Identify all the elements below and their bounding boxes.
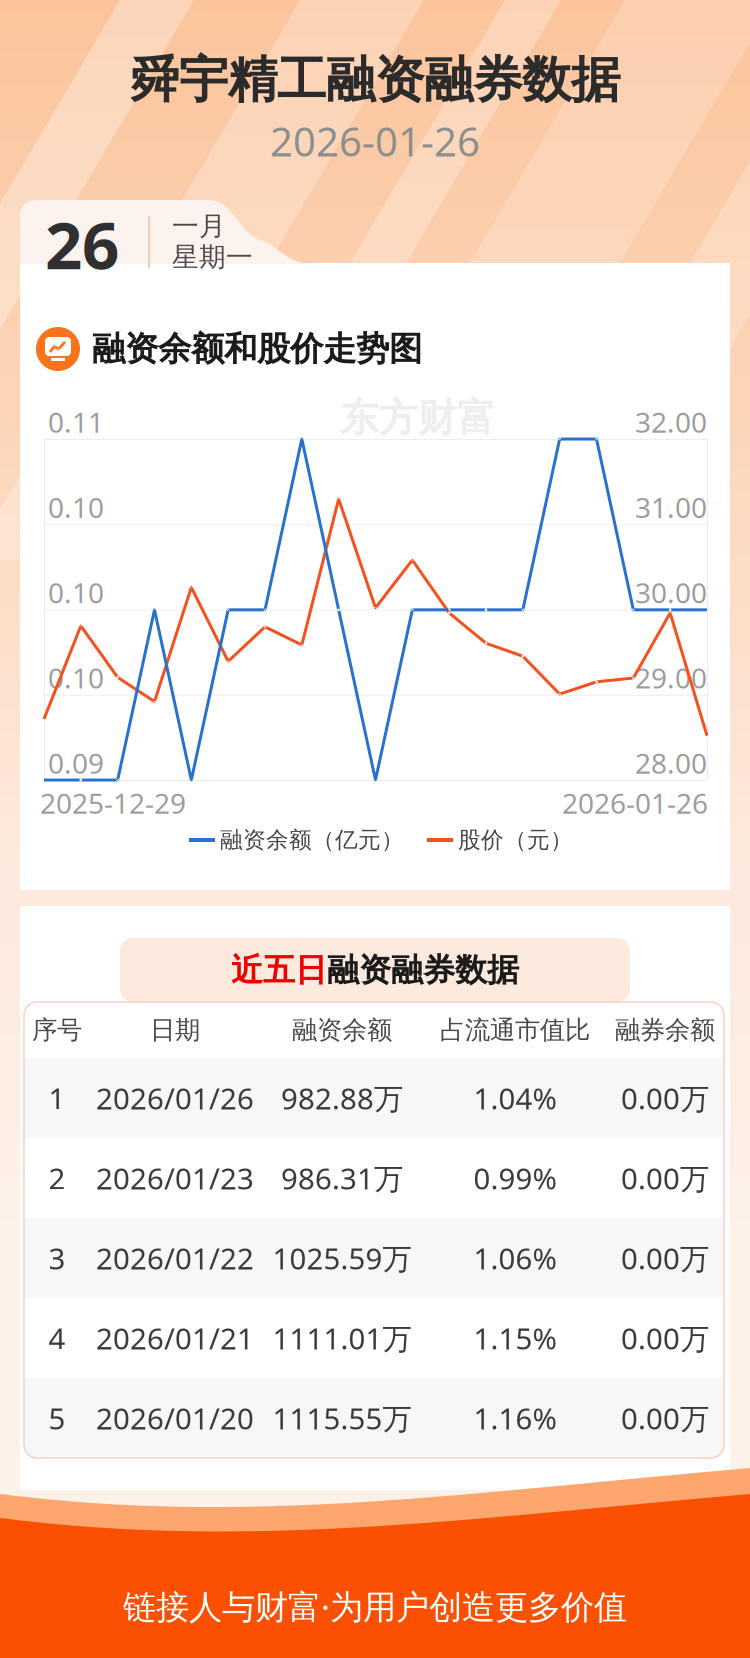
staticText: 5 [48,1398,65,1437]
staticText: 2026/01/23 [96,1158,254,1197]
staticText: 日期 [150,1014,200,1045]
staticText: 1.15% [473,1318,556,1357]
staticText: 986.31万 [281,1158,403,1197]
staticText: 32.00 [635,403,707,441]
staticText: 1.16% [473,1398,556,1437]
staticText: 29.00 [635,659,707,696]
staticText: 0.10 [48,489,104,526]
staticText: 0.99% [473,1158,556,1197]
staticText: 2026/01/21 [96,1318,254,1357]
staticText: 融资余额和股价走势图 [92,328,422,369]
staticText: 2 [48,1158,65,1197]
staticText: 近五日 [231,950,327,990]
staticText: 占流通市值比 [440,1014,590,1045]
staticText: 0.00万 [621,1158,709,1197]
staticText: 序号 [32,1014,82,1045]
staticText: 26 [45,201,119,287]
staticText: 0.09 [48,744,104,782]
staticText: 融资余额（亿元） [220,826,404,854]
staticText: 2026/01/26 [96,1078,254,1117]
staticText: 0.10 [48,659,104,696]
staticText: 4 [48,1318,65,1357]
staticText: 0.00万 [621,1078,709,1117]
staticText: 0.10 [48,574,104,611]
staticText: 31.00 [635,489,707,526]
staticText: 1115.55万 [272,1398,411,1437]
staticText: 融资融券数据 [327,950,519,990]
staticText: 2025-12-29 [40,784,186,822]
staticText: 982.88万 [281,1078,403,1117]
staticText: 28.00 [635,744,707,782]
staticText: 0.00万 [621,1238,709,1277]
staticText: 0.11 [48,403,104,441]
staticText: 股价（元） [458,826,573,854]
staticText: 30.00 [635,574,707,611]
staticText: 1 [48,1078,65,1117]
staticText: 1.04% [473,1078,556,1117]
staticText: 东方财富 [340,394,496,442]
staticText: 一月 [172,210,226,242]
staticText: 1025.59万 [272,1238,411,1277]
staticText: 2026-01-26 [270,114,480,167]
staticText: 链接人与财富·为用户创造更多价值 [123,1584,627,1628]
staticText: 2026-01-26 [562,784,708,822]
staticText: 融券余额 [615,1014,715,1045]
staticText: 1111.01万 [272,1318,411,1357]
staticText: 1.06% [473,1238,556,1277]
staticText: 3 [48,1238,65,1277]
staticText: 融资余额 [292,1014,392,1045]
staticText: 0.00万 [621,1398,709,1437]
staticText: 0.00万 [621,1318,709,1357]
staticText: 2026/01/22 [96,1238,254,1277]
staticText: 2026/01/20 [96,1398,254,1437]
staticText: 星期一 [172,241,253,273]
staticText: 舜宇精工融资融券数据 [130,50,620,110]
